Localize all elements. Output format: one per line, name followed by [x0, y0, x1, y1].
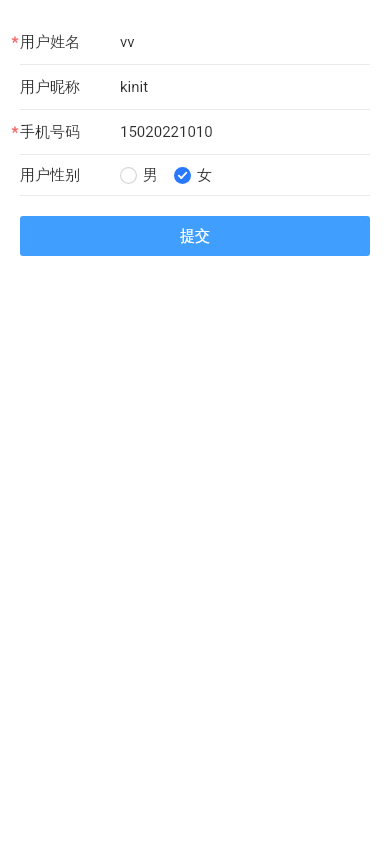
button[interactable]: 提交	[20, 216, 370, 256]
button[interactable]: 用户姓名	[0, 20, 390, 64]
button[interactable]: 手机号码	[0, 110, 390, 154]
staticText: 15020221010	[120, 123, 213, 141]
button[interactable]: 用户昵称	[0, 65, 390, 109]
button[interactable]: 男	[120, 166, 158, 185]
button[interactable]: 用户性别	[0, 155, 390, 195]
staticText: vv	[120, 33, 135, 51]
staticText: 用户姓名	[20, 33, 80, 52]
staticText: 用户昵称	[20, 78, 80, 97]
staticText: 男	[143, 166, 158, 185]
staticText: 女	[197, 166, 212, 185]
staticText: 用户性别	[20, 166, 80, 185]
button[interactable]: 女	[174, 166, 212, 185]
staticText: 手机号码	[20, 123, 80, 142]
staticText: 提交	[180, 227, 210, 246]
staticText: kinit	[120, 78, 149, 96]
